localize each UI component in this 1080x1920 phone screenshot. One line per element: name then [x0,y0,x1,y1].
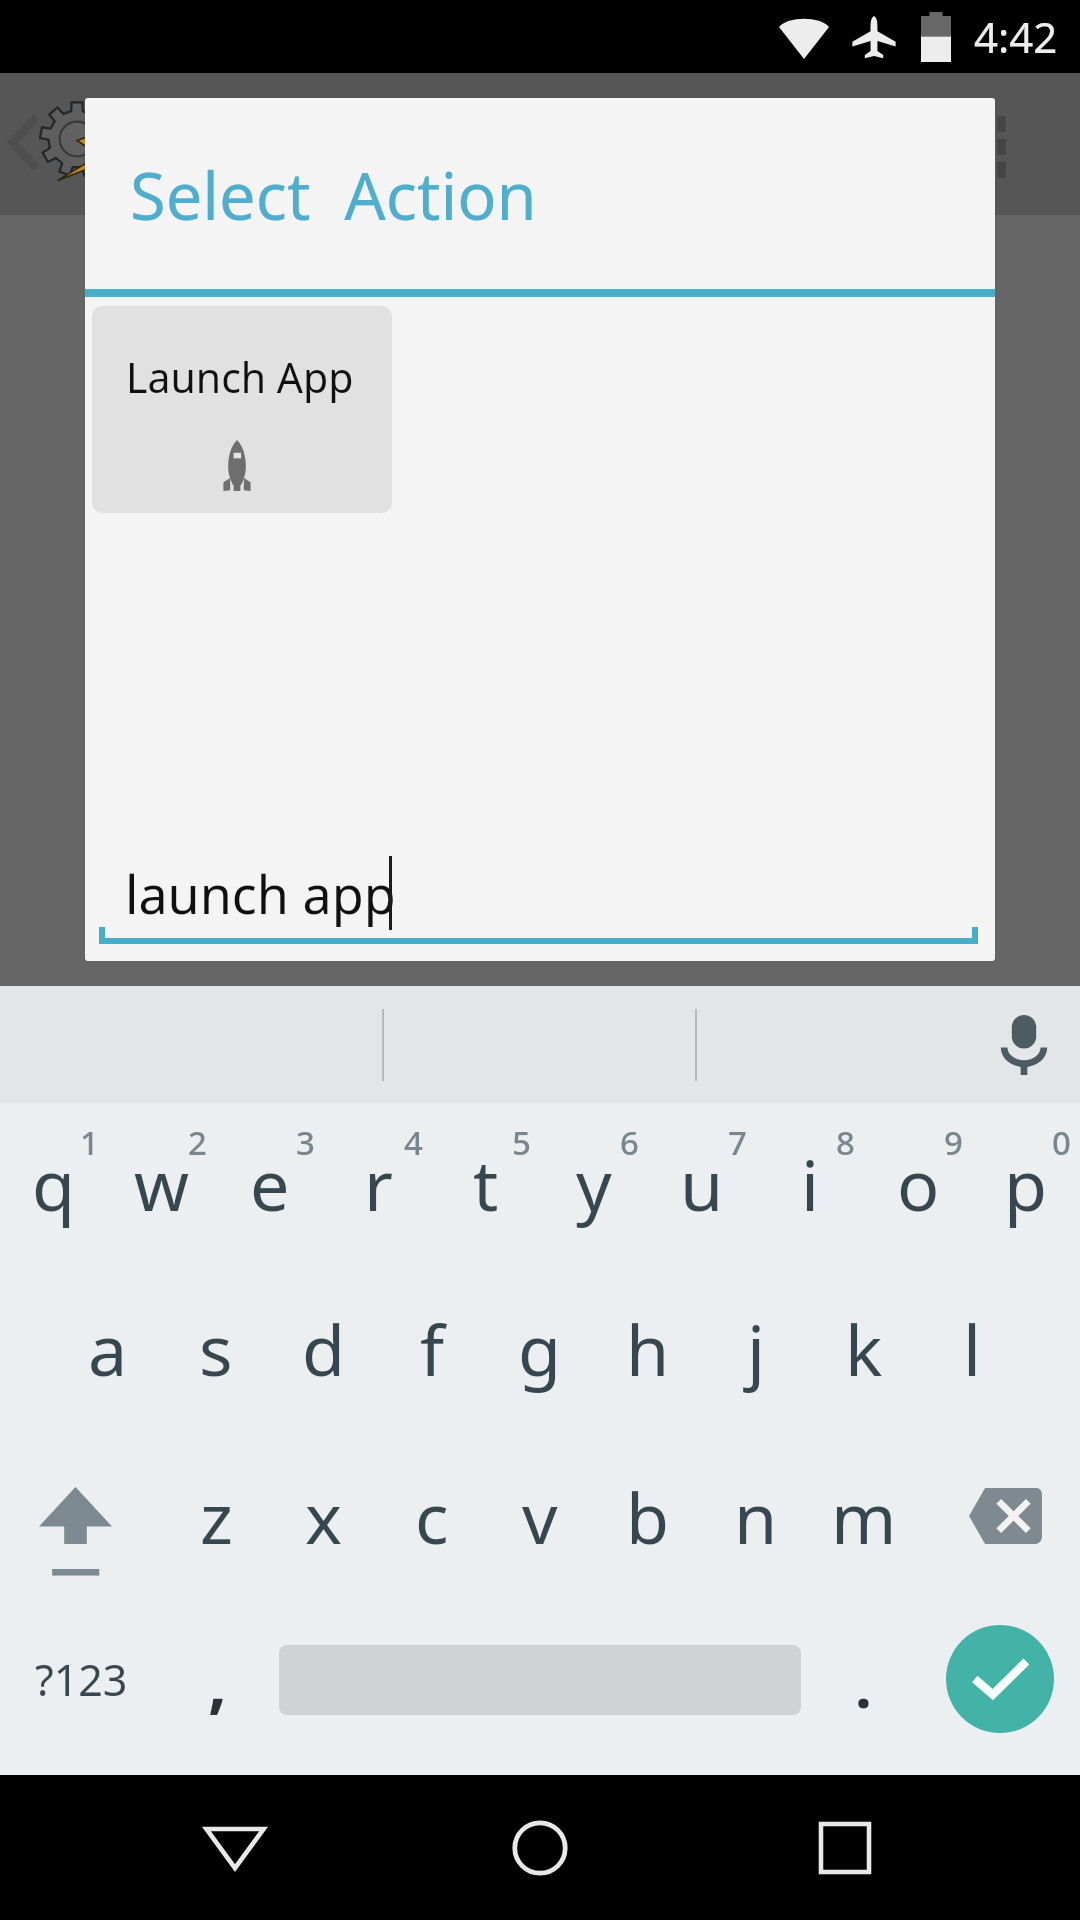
button[interactable]: More options [990,84,1080,204]
staticText: u [680,1136,724,1231]
button[interactable] [275,1613,815,1775]
staticText: p [1004,1136,1048,1231]
button[interactable]: Shift [0,1443,162,1613]
staticText: g [518,1301,562,1396]
button[interactable]: v [486,1443,594,1613]
button[interactable]: 2 [108,1103,216,1273]
staticText: 7 [728,1120,747,1165]
staticText: h [626,1301,670,1396]
button[interactable]: Enter [915,1613,1080,1775]
button[interactable]: b [594,1443,702,1613]
button[interactable]: Recents [790,1793,900,1903]
staticText: m [831,1469,897,1564]
button[interactable]: k [810,1273,918,1443]
button[interactable]: 0 [972,1103,1080,1273]
staticText: n [734,1469,778,1564]
button[interactable]: 9 [864,1103,972,1273]
staticText: 4:42 [974,8,1058,65]
button[interactable]: 7 [648,1103,756,1273]
staticText: ?123 [35,1650,128,1709]
staticText: 1 [80,1120,99,1165]
staticText: Select Action [130,151,537,240]
button[interactable]: 4 [324,1103,432,1273]
staticText: 6 [620,1120,639,1165]
staticText: t [473,1136,499,1231]
staticText: b [626,1469,670,1564]
button[interactable]: 1 [0,1103,108,1273]
button[interactable]: a [54,1273,162,1443]
button[interactable]: 6 [540,1103,648,1273]
button[interactable]: Action name text field [85,833,995,961]
button[interactable]: . [810,1613,915,1775]
staticText: 8 [836,1120,855,1165]
staticText: w [134,1136,190,1231]
button[interactable]: z [162,1443,270,1613]
staticText: k [845,1301,883,1396]
button[interactable]: Home [485,1793,595,1903]
staticText: i [801,1136,820,1231]
staticText: , [208,1635,227,1725]
staticText: v [522,1469,558,1564]
button[interactable]: j [702,1273,810,1443]
staticText: 9 [944,1120,963,1165]
button[interactable]: 3 [216,1103,324,1273]
button[interactable]: s [162,1273,270,1443]
staticText: Launch App [126,349,354,405]
staticText: d [302,1301,346,1396]
button[interactable]: 5 [432,1103,540,1273]
staticText: x [305,1469,343,1564]
button[interactable]: g [486,1273,594,1443]
staticText: s [199,1301,233,1396]
button[interactable]: 8 [756,1103,864,1273]
staticText: 2 [188,1120,207,1165]
staticText: y [576,1136,612,1231]
staticText: 3 [296,1120,315,1165]
staticText: launch app [125,858,396,929]
button[interactable]: f [378,1273,486,1443]
button[interactable]: m [810,1443,918,1613]
button[interactable]: n [702,1443,810,1613]
button[interactable]: d [270,1273,378,1443]
staticText: z [200,1469,233,1564]
button[interactable]: Navigate up [2,89,46,199]
staticText: r [364,1136,393,1231]
staticText: o [897,1136,940,1231]
staticText: l [963,1301,982,1396]
button[interactable]: Back [180,1793,290,1903]
staticText: 0 [1052,1120,1071,1165]
button[interactable]: l [918,1273,1026,1443]
staticText: j [747,1301,766,1396]
button[interactable]: Delete [918,1443,1080,1613]
button[interactable]: ?123 [0,1613,170,1775]
staticText: 5 [512,1120,531,1165]
staticText: . [855,1644,872,1726]
button[interactable]: , [170,1613,275,1775]
button[interactable]: c [378,1443,486,1613]
button[interactable]: h [594,1273,702,1443]
staticText: 4 [404,1120,423,1165]
staticText: c [415,1469,449,1564]
staticText: q [32,1136,76,1231]
button[interactable]: Voice input [990,1011,1058,1079]
staticText: e [250,1136,290,1231]
staticText: f [420,1301,445,1396]
button[interactable]: x [270,1443,378,1613]
staticText: a [88,1301,128,1396]
button[interactable]: Launch App [92,306,392,513]
